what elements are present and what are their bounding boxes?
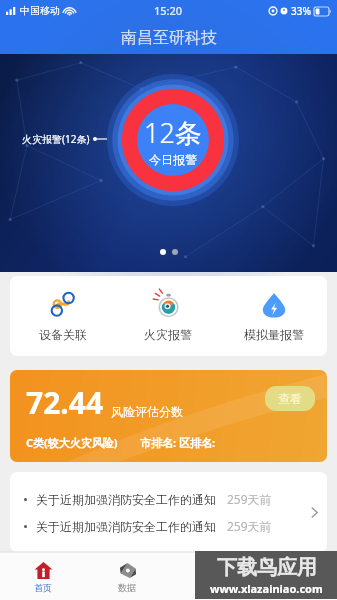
staticText: 市排名: 区排名:	[140, 435, 216, 450]
staticText: 首页	[34, 582, 52, 593]
staticText: C类(较大火灾风险)	[26, 435, 118, 450]
staticText: 72.44	[26, 382, 104, 423]
staticText: 风险评估分数	[111, 404, 183, 419]
staticText: www.xlazainiao.com	[210, 581, 323, 596]
staticText: 模拟量报警	[244, 327, 304, 342]
staticText: 今日报警	[149, 152, 197, 167]
staticText: 查看	[278, 391, 302, 406]
staticText: 数据	[118, 582, 136, 593]
staticText: 设备关联	[39, 327, 87, 342]
staticText: 关于近期加强消防安全工作的通知	[36, 519, 216, 534]
staticText: 关于近期加强消防安全工作的通知	[36, 492, 216, 507]
button[interactable]: 设备关联	[10, 288, 115, 344]
button[interactable]: 关于近期加强消防安全工作的通知	[10, 472, 327, 552]
staticText: 259天前	[227, 491, 272, 507]
staticText: 中国移动	[20, 4, 60, 17]
staticText: 33%	[291, 4, 311, 18]
staticText: 下载鸟应用	[217, 555, 317, 580]
button[interactable]: 火灾报警	[115, 288, 221, 344]
staticText: 259天前	[227, 518, 272, 534]
staticText: 12条	[144, 114, 202, 151]
button[interactable]: 首页	[0, 552, 85, 600]
button[interactable]: 数据	[85, 552, 169, 600]
staticText: 南昌至研科技	[121, 28, 217, 48]
button[interactable]: 72.44	[10, 370, 327, 462]
button[interactable]: 查看	[265, 386, 315, 411]
button[interactable]: 今日报警 12 条	[107, 74, 239, 206]
staticText: 火灾报警(12条)	[22, 132, 90, 146]
button[interactable]: 模拟量报警	[221, 288, 327, 344]
staticText: 15:20	[154, 3, 183, 18]
staticText: 火灾报警	[144, 327, 192, 342]
